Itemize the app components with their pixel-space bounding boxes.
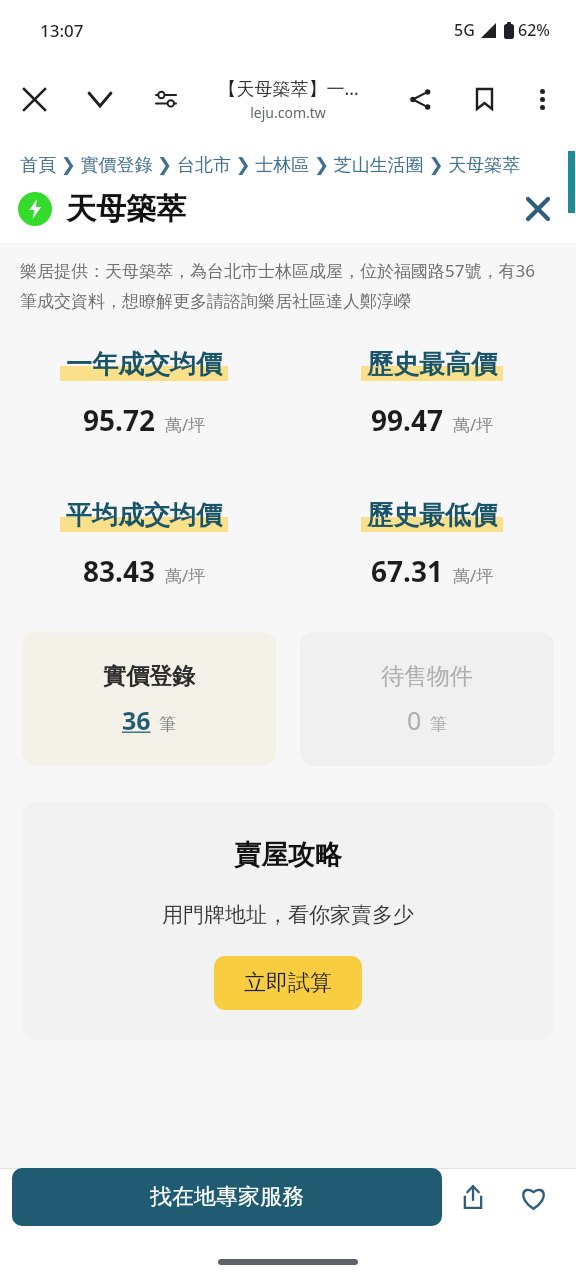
staticText: 天母築萃 bbox=[66, 190, 186, 228]
staticText: 歷史最高價 bbox=[367, 348, 497, 381]
staticText: 萬/坪 bbox=[453, 413, 494, 436]
button[interactable]: 實價登錄 bbox=[22, 632, 276, 766]
staticText: 待售物件 bbox=[381, 662, 473, 691]
button[interactable]: Close bbox=[12, 77, 56, 121]
staticText: 賣屋攻略 bbox=[234, 838, 342, 872]
button[interactable]: 一年成交均價 bbox=[0, 348, 288, 439]
staticText: 歷史最低價 bbox=[367, 499, 497, 532]
staticText: 實價登錄 bbox=[103, 662, 195, 691]
staticText: leju.com.tw bbox=[250, 103, 326, 122]
staticText: 立即試算 bbox=[244, 969, 332, 997]
button[interactable]: 平均成交均價 bbox=[0, 499, 288, 590]
staticText: 99.47 bbox=[371, 401, 443, 439]
staticText: 0 bbox=[407, 703, 422, 737]
button[interactable]: Favorite bbox=[504, 1168, 562, 1226]
staticText: 平均成交均價 bbox=[66, 499, 222, 532]
staticText: 【天母築萃】一… bbox=[218, 76, 359, 101]
staticText: 找在地專家服務 bbox=[150, 1183, 304, 1211]
button[interactable]: 立即試算 bbox=[214, 956, 362, 1010]
staticText: 萬/坪 bbox=[165, 413, 206, 436]
button[interactable]: 找在地專家服務 bbox=[12, 1168, 442, 1226]
staticText: 62% bbox=[518, 19, 550, 41]
staticText: 一年成交均價 bbox=[66, 348, 222, 381]
button[interactable]: Close banner bbox=[518, 189, 558, 229]
staticText: 筆 bbox=[159, 714, 176, 735]
button[interactable]: More options bbox=[520, 77, 564, 121]
staticText: 萬/坪 bbox=[453, 564, 494, 587]
staticText: 5G bbox=[454, 19, 475, 41]
staticText: 樂居提供：天母築萃，為台北市士林區成屋，位於福國路57號，有36筆成交資料，想瞭… bbox=[20, 259, 544, 312]
staticText: 首頁 ❯ 實價登錄 ❯ 台北市 ❯ 士林區 ❯ 芝山生活圈 ❯ 天母築萃 bbox=[20, 152, 521, 177]
button[interactable]: Share bbox=[398, 77, 442, 121]
staticText: 萬/坪 bbox=[165, 564, 206, 587]
button[interactable]: 歷史最高價 bbox=[288, 348, 576, 439]
staticText: 67.31 bbox=[371, 552, 443, 590]
staticText: 36 bbox=[122, 703, 151, 737]
button[interactable]: Collapse bbox=[78, 77, 122, 121]
staticText: 83.43 bbox=[83, 552, 155, 590]
button[interactable]: 待售物件 bbox=[300, 632, 554, 766]
staticText: 95.72 bbox=[83, 401, 155, 439]
button[interactable]: 歷史最低價 bbox=[288, 499, 576, 590]
staticText: 筆 bbox=[430, 714, 447, 735]
button[interactable]: Share bbox=[442, 1168, 504, 1226]
staticText: 13:07 bbox=[40, 19, 84, 42]
button[interactable]: Page info bbox=[144, 77, 188, 121]
button[interactable]: Bookmark bbox=[462, 77, 506, 121]
staticText: 用門牌地址，看你家賣多少 bbox=[162, 902, 414, 928]
